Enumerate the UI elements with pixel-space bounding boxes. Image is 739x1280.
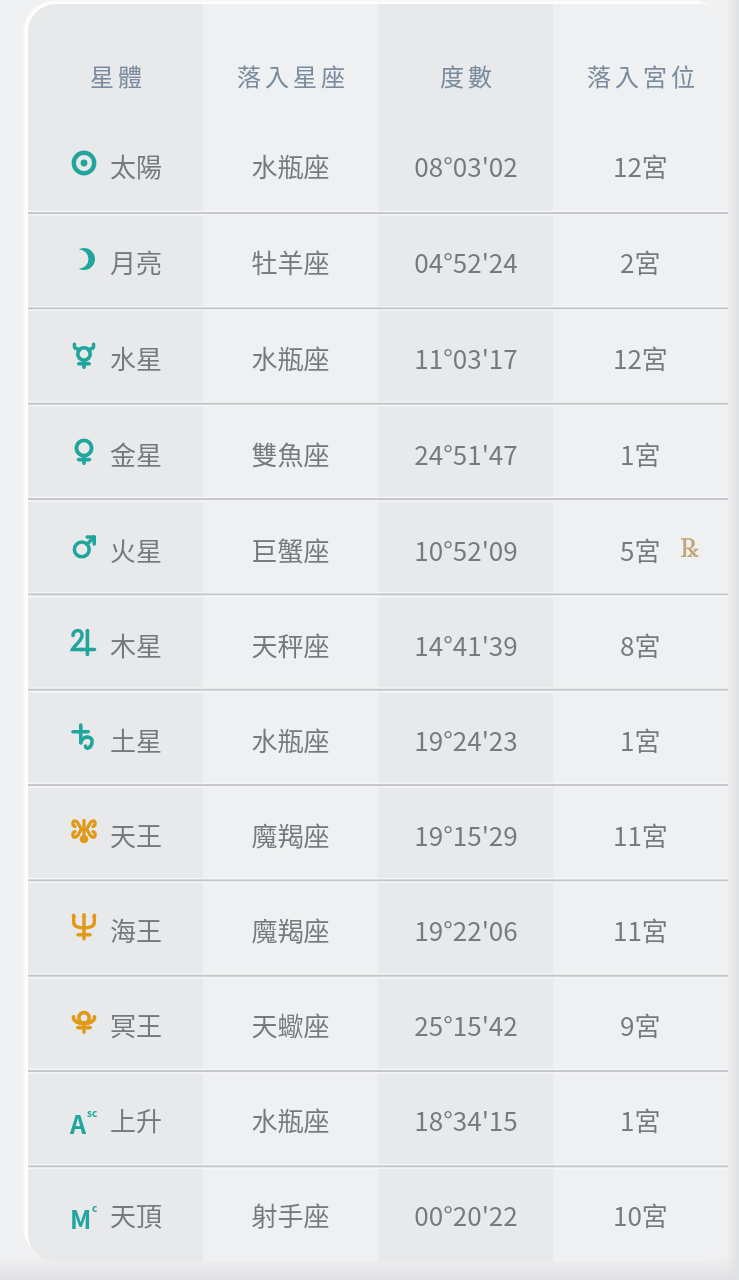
staticText: 海王 xyxy=(110,911,163,949)
button[interactable]: 金星 xyxy=(28,406,728,501)
staticText: 12宮 xyxy=(613,147,668,185)
staticText: 天頂 xyxy=(110,1196,163,1234)
staticText: 19°15'29 xyxy=(414,816,518,854)
staticText: 水瓶座 xyxy=(251,1101,330,1139)
staticText: 魔羯座 xyxy=(251,911,330,949)
staticText: 水瓶座 xyxy=(251,147,330,185)
staticText: 14°41'39 xyxy=(414,626,518,664)
staticText: 2宮 xyxy=(620,243,661,281)
staticText: 1宮 xyxy=(620,435,661,473)
staticText: M xyxy=(70,1200,92,1230)
staticText: 11宮 xyxy=(613,911,668,949)
button[interactable]: 火星 xyxy=(28,502,728,597)
staticText: 19°22'06 xyxy=(414,911,518,949)
staticText: 18°34'15 xyxy=(414,1101,518,1139)
staticText: 1宮 xyxy=(620,721,661,759)
staticText: 天蠍座 xyxy=(251,1006,330,1044)
button[interactable]: 木星 xyxy=(28,598,728,692)
button[interactable]: 度數 xyxy=(378,4,553,118)
staticText: 8宮 xyxy=(620,626,661,664)
button[interactable]: 太陽 xyxy=(28,118,728,213)
staticText: 土星 xyxy=(110,721,163,759)
button[interactable]: 天王 xyxy=(28,788,728,882)
staticText: 星體 xyxy=(90,58,146,93)
staticText: 金星 xyxy=(110,435,163,473)
staticText: 天王 xyxy=(110,816,163,854)
staticText: 冥王 xyxy=(110,1006,163,1044)
staticText: 24°51'47 xyxy=(414,435,518,473)
staticText: 木星 xyxy=(110,626,163,664)
button[interactable]: 星體 xyxy=(28,4,203,118)
staticText: c xyxy=(92,1200,98,1214)
button[interactable]: 上升 xyxy=(28,1073,728,1167)
button[interactable]: 水星 xyxy=(28,310,728,405)
staticText: 19°24'23 xyxy=(414,721,518,759)
button[interactable]: 土星 xyxy=(28,693,728,787)
staticText: 00°20'22 xyxy=(414,1196,518,1234)
staticText: 水瓶座 xyxy=(251,339,330,377)
staticText: 雙魚座 xyxy=(251,435,330,473)
staticText: 巨蟹座 xyxy=(251,531,330,569)
staticText: 天秤座 xyxy=(251,626,330,664)
staticText: 落入星座 xyxy=(237,58,349,93)
button[interactable]: 天頂 xyxy=(28,1168,728,1262)
staticText: 射手座 xyxy=(251,1196,330,1234)
staticText: 太陽 xyxy=(110,147,163,185)
button[interactable]: 落入星座 xyxy=(203,4,378,118)
staticText: A xyxy=(70,1105,87,1135)
staticText: 10°52'09 xyxy=(414,531,518,569)
staticText: 12宮 xyxy=(613,339,668,377)
staticText: 度數 xyxy=(440,58,496,93)
staticText: 11°03'17 xyxy=(414,339,518,377)
staticText: 火星 xyxy=(110,531,163,569)
staticText: 04°52'24 xyxy=(414,243,518,281)
staticText: 08°03'02 xyxy=(414,147,518,185)
staticText: 魔羯座 xyxy=(251,816,330,854)
staticText: 10宮 xyxy=(613,1196,668,1234)
staticText: 11宮 xyxy=(613,816,668,854)
staticText: ℞ xyxy=(680,529,699,564)
button[interactable]: 海王 xyxy=(28,883,728,977)
staticText: 牡羊座 xyxy=(251,243,330,281)
staticText: 月亮 xyxy=(110,243,163,281)
button[interactable]: 落入宮位 xyxy=(553,4,728,118)
staticText: 5宮 xyxy=(620,531,661,569)
button[interactable]: 月亮 xyxy=(28,214,728,309)
staticText: 9宮 xyxy=(620,1006,661,1044)
staticText: 水瓶座 xyxy=(251,721,330,759)
staticText: 上升 xyxy=(110,1101,163,1139)
staticText: 落入宮位 xyxy=(587,58,699,93)
staticText: sc xyxy=(87,1105,98,1119)
staticText: 水星 xyxy=(110,339,163,377)
button[interactable]: 冥王 xyxy=(28,978,728,1072)
staticText: 25°15'42 xyxy=(414,1006,518,1044)
staticText: 1宮 xyxy=(620,1101,661,1139)
